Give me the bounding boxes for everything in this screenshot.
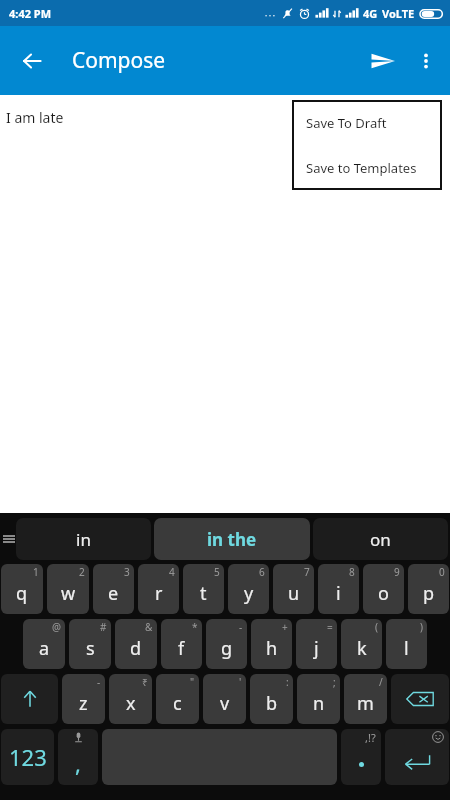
staticText: 1 — [33, 565, 39, 579]
button[interactable]: / — [344, 674, 387, 724]
staticText: 9 — [394, 565, 400, 579]
button[interactable]: 8 — [318, 564, 359, 614]
button[interactable]: Save to Templates — [292, 145, 442, 190]
button[interactable]: Backspace — [391, 674, 449, 724]
staticText: + — [282, 620, 288, 634]
staticText: v — [220, 691, 230, 716]
button[interactable]: ,!? — [341, 729, 381, 785]
staticText: & — [145, 620, 153, 634]
button[interactable]: More options — [406, 41, 446, 81]
staticText: e — [108, 581, 119, 606]
staticText: u — [288, 581, 300, 606]
staticText: f — [178, 636, 185, 661]
staticText: 4:42 PM — [9, 6, 52, 21]
staticText: " — [190, 675, 195, 689]
staticText: o — [378, 581, 389, 606]
staticText: 4G — [363, 6, 378, 21]
staticText: Compose — [72, 46, 166, 75]
staticText: , — [75, 748, 81, 778]
button[interactable]: + — [251, 619, 292, 669]
button[interactable]: in the — [154, 518, 310, 560]
staticText: i — [336, 581, 341, 606]
staticText: ; — [333, 675, 336, 689]
staticText: g — [221, 636, 233, 661]
staticText: in the — [207, 528, 257, 551]
staticText: ,!? — [365, 730, 376, 745]
staticText: k — [357, 636, 367, 661]
staticText: b — [266, 691, 278, 716]
staticText: n — [313, 691, 325, 716]
button[interactable]: Shift — [1, 674, 58, 724]
staticText: 3 — [124, 565, 130, 579]
staticText: x — [126, 691, 136, 716]
staticText: 4 — [169, 565, 175, 579]
button[interactable]: 7 — [273, 564, 314, 614]
button[interactable]: @ — [23, 619, 65, 669]
staticText: @ — [52, 620, 61, 634]
staticText: = — [327, 620, 333, 634]
staticText: r — [155, 581, 163, 606]
staticText: j — [314, 636, 319, 661]
button[interactable]: ) — [386, 619, 427, 669]
staticText: Save to Templates — [306, 159, 417, 177]
button[interactable]: * — [161, 619, 202, 669]
button[interactable]: ' — [203, 674, 246, 724]
button[interactable]: 0 — [408, 564, 449, 614]
staticText: ) — [420, 620, 423, 634]
button[interactable]: Enter — [385, 729, 449, 785]
staticText: w — [61, 581, 76, 606]
button[interactable]: 3 — [93, 564, 134, 614]
staticText: ₹ — [142, 675, 148, 689]
staticText: in — [76, 528, 91, 551]
button[interactable]: 9 — [363, 564, 404, 614]
button[interactable]: 6 — [228, 564, 269, 614]
staticText: d — [130, 636, 142, 661]
staticText: * — [192, 620, 198, 634]
staticText: 7 — [304, 565, 310, 579]
staticText: l — [404, 636, 409, 661]
button[interactable]: # — [69, 619, 111, 669]
staticText: a — [39, 636, 50, 661]
staticText: - — [239, 620, 243, 634]
staticText: y — [244, 581, 254, 606]
staticText: t — [200, 581, 207, 606]
button[interactable]: Back — [10, 39, 54, 83]
staticText: # — [100, 620, 107, 634]
button[interactable]: - — [62, 674, 105, 724]
staticText: 2 — [79, 565, 85, 579]
button[interactable]: - — [206, 619, 247, 669]
staticText: : — [286, 675, 289, 689]
staticText: c — [173, 691, 182, 716]
button[interactable]: Keyboard menu — [2, 518, 16, 560]
button[interactable]: ₹ — [109, 674, 152, 724]
staticText: z — [79, 691, 88, 716]
button[interactable]: = — [296, 619, 337, 669]
staticText: h — [266, 636, 278, 661]
button[interactable]: on — [313, 518, 448, 560]
button[interactable]: Save To Draft — [292, 100, 442, 145]
button[interactable]: , — [58, 729, 98, 785]
button[interactable]: 123 — [1, 729, 54, 785]
button[interactable]: " — [156, 674, 199, 724]
staticText: - — [97, 675, 101, 689]
button[interactable]: 5 — [183, 564, 224, 614]
staticText: ( — [375, 620, 378, 634]
staticText: I am late — [6, 108, 64, 127]
button[interactable]: Send — [360, 38, 406, 84]
staticText: m — [357, 691, 374, 716]
button[interactable]: ; — [297, 674, 340, 724]
button[interactable]: : — [250, 674, 293, 724]
button[interactable]: 4 — [138, 564, 179, 614]
staticText: 8 — [349, 565, 355, 579]
staticText: q — [16, 581, 28, 606]
staticText: ' — [239, 675, 242, 689]
button[interactable]: in — [16, 518, 151, 560]
button[interactable]: ( — [341, 619, 382, 669]
button[interactable]: 2 — [47, 564, 89, 614]
staticText: on — [370, 528, 391, 551]
staticText: Save To Draft — [306, 114, 387, 132]
staticText: / — [379, 675, 383, 689]
button[interactable]: & — [115, 619, 157, 669]
button[interactable]: 1 — [1, 564, 43, 614]
